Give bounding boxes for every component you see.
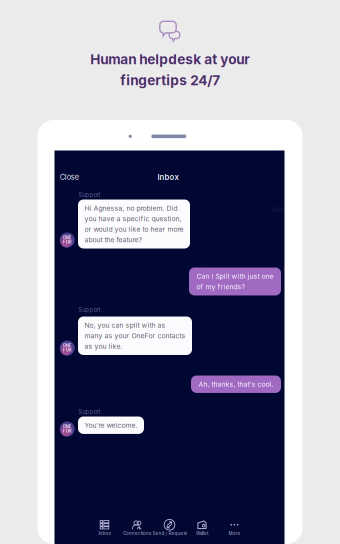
staticText: Connections xyxy=(123,531,151,536)
staticText: Hi Agnessa, no problem. Did you have a s… xyxy=(84,204,183,244)
staticText: FOR xyxy=(63,347,72,353)
button[interactable]: Inbox xyxy=(88,519,121,538)
staticText: Mon xyxy=(272,206,283,213)
staticText: FOR xyxy=(63,239,72,245)
staticText: Support xyxy=(78,191,100,198)
button[interactable]: Connections xyxy=(121,519,153,538)
staticText: Inbox xyxy=(98,531,110,536)
button[interactable]: Send / Request xyxy=(153,519,186,538)
staticText: Support xyxy=(78,408,100,415)
staticText: Human helpdesk at your fingertips 24/7 xyxy=(90,51,250,88)
staticText: ONE xyxy=(63,235,72,240)
staticText: Support xyxy=(78,306,100,313)
staticText: Inbox xyxy=(157,172,178,182)
staticText: FOR xyxy=(63,428,72,434)
staticText: Wallet xyxy=(196,531,208,536)
button[interactable]: Wallet xyxy=(186,519,218,538)
staticText: Close xyxy=(60,172,79,181)
button[interactable]: More xyxy=(218,519,251,538)
staticText: Ah, thanks, that's cool. xyxy=(198,380,273,388)
staticText: ONE xyxy=(63,424,72,429)
staticText: ONE xyxy=(63,343,72,348)
staticText: You're welcome. xyxy=(84,421,137,429)
button[interactable]: Close xyxy=(60,172,79,181)
staticText: No, you can split with as many as your O… xyxy=(84,321,185,350)
staticText: Send / Request xyxy=(152,531,186,536)
staticText: Can I Split with just one of my friends? xyxy=(196,272,273,291)
staticText: More xyxy=(228,531,240,536)
